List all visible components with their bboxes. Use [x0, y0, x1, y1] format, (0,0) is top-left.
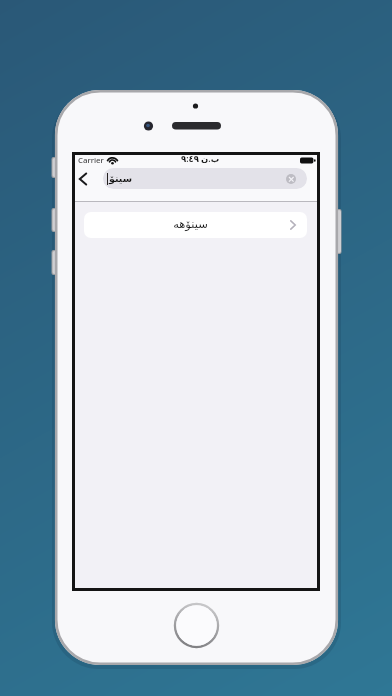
button[interactable]: [174, 603, 219, 648]
staticText: سينۆهه: [173, 217, 208, 230]
button[interactable]: [286, 174, 296, 184]
staticText: Carrier: [78, 155, 104, 165]
button[interactable]: سينۆ: [103, 168, 307, 189]
button[interactable]: [74, 170, 92, 188]
staticText: ب.ن ٩:٤٩: [181, 153, 220, 163]
button[interactable]: سينۆهه: [84, 212, 307, 238]
staticText: سينۆ: [109, 173, 133, 184]
